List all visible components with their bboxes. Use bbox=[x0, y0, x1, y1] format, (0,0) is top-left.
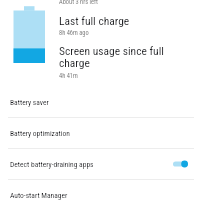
staticText: About 3 hrs left bbox=[59, 0, 98, 6]
other: Detect battery-draining apps toggle bbox=[173, 158, 188, 170]
staticText: Last full charge bbox=[59, 14, 130, 27]
button[interactable]: Battery optimization bbox=[0, 118, 200, 149]
button[interactable]: Auto-start Manager bbox=[0, 180, 200, 200]
staticText: Screen usage since full charge bbox=[59, 44, 169, 69]
staticText: Auto-start Manager bbox=[10, 191, 68, 200]
staticText: Detect battery-draining apps bbox=[10, 160, 94, 169]
staticText: Battery optimization bbox=[10, 129, 70, 138]
button[interactable]: Battery saver bbox=[0, 87, 200, 118]
staticText: 8h 46m ago bbox=[59, 29, 89, 37]
button[interactable]: Detect battery-draining apps bbox=[0, 149, 200, 180]
staticText: 4h 41m bbox=[59, 72, 78, 80]
staticText: Battery saver bbox=[10, 98, 49, 107]
